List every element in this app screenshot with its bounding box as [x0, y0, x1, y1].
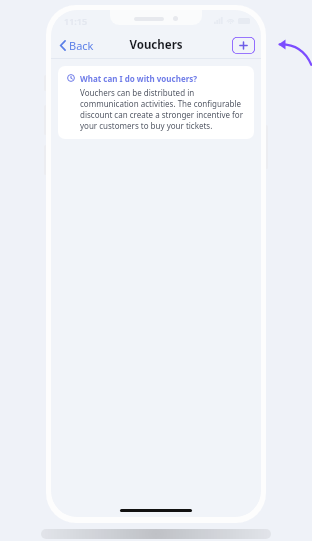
staticText: Back [69, 38, 94, 53]
button[interactable]: Back [56, 35, 98, 56]
button[interactable]: What can I do with vouchers? [58, 66, 254, 139]
staticText: What can I do with vouchers? [80, 73, 198, 84]
staticText: Vouchers can be distributed in communica… [80, 87, 245, 131]
button[interactable]: Add voucher [232, 37, 255, 54]
staticText: 11:15 [64, 15, 88, 27]
staticText: Vouchers [129, 37, 183, 53]
